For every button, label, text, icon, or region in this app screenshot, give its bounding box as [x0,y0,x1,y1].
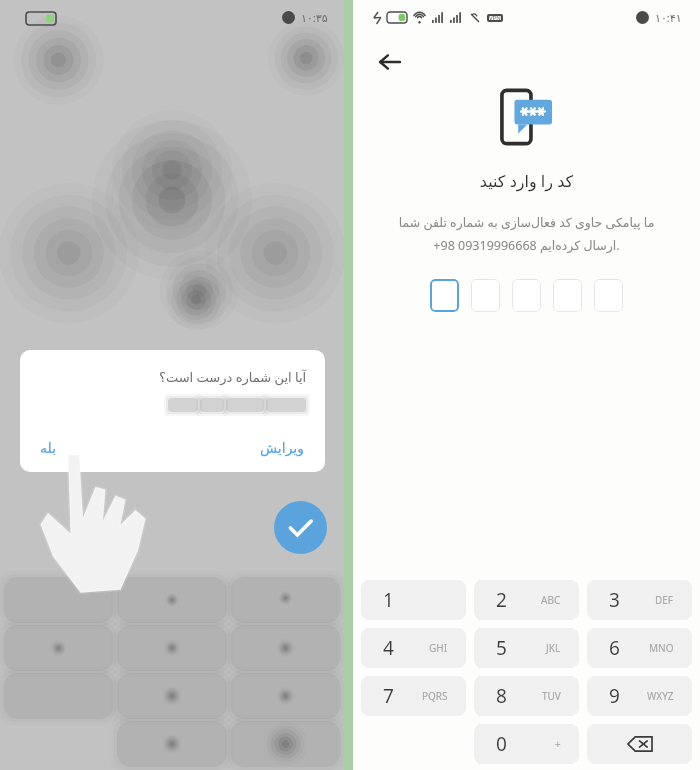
button[interactable]: Digit 2 [471,279,500,312]
button[interactable]: 9 [587,676,692,716]
staticText: 0 [496,731,507,757]
staticText: VPN [489,14,501,22]
button[interactable]: ویرایش [240,436,325,460]
button[interactable]: 5 [474,628,579,668]
staticText: کد را وارد کنید [353,170,700,192]
staticText: 7 [383,683,394,709]
button[interactable]: 7 [361,676,466,716]
staticText: بله [40,440,57,456]
button[interactable]: Digit 3 [512,279,541,312]
staticText: 4 [383,635,394,661]
staticText: 6 [609,635,620,661]
staticText: MNO [649,641,674,655]
button[interactable]: 2 [474,580,579,620]
staticText: JKL [546,641,561,655]
staticText: ABC [541,593,561,607]
button[interactable]: Confirm [274,501,327,554]
staticText: 5 [496,635,507,661]
staticText: 1 [383,587,394,613]
button[interactable]: 8 [474,676,579,716]
button[interactable]: بله [20,436,77,460]
button[interactable]: 0 [474,724,579,764]
button[interactable]: 1 [361,580,466,620]
button[interactable]: 4 [361,628,466,668]
staticText: ویرایش [260,440,305,456]
button[interactable]: 6 [587,628,692,668]
staticText: ۱۰:۳۵ [301,10,328,25]
staticText: + [555,737,561,751]
staticText: PQRS [422,689,448,703]
staticText: WXYZ [647,689,674,703]
staticText: آیا این شماره درست است؟ [159,368,307,386]
staticText: 8 [496,683,507,709]
button[interactable]: Digit 5 [594,279,623,312]
staticText: 2 [496,587,507,613]
button[interactable]: Digit 4 [553,279,582,312]
button[interactable]: Back [369,42,409,82]
staticText: TUV [542,689,561,703]
button[interactable]: Backspace [587,724,692,764]
staticText: 3 [609,587,620,613]
staticText: 9 [609,683,620,709]
staticText: ۱۰:۴۱ [655,10,682,25]
staticText: DEF [655,593,674,607]
staticText: ما پیامکی حاوی کد فعال‌سازی به شماره تلف… [377,214,676,253]
button[interactable]: 3 [587,580,692,620]
button[interactable]: Digit 1 [430,279,459,312]
staticText: GHI [429,641,448,655]
